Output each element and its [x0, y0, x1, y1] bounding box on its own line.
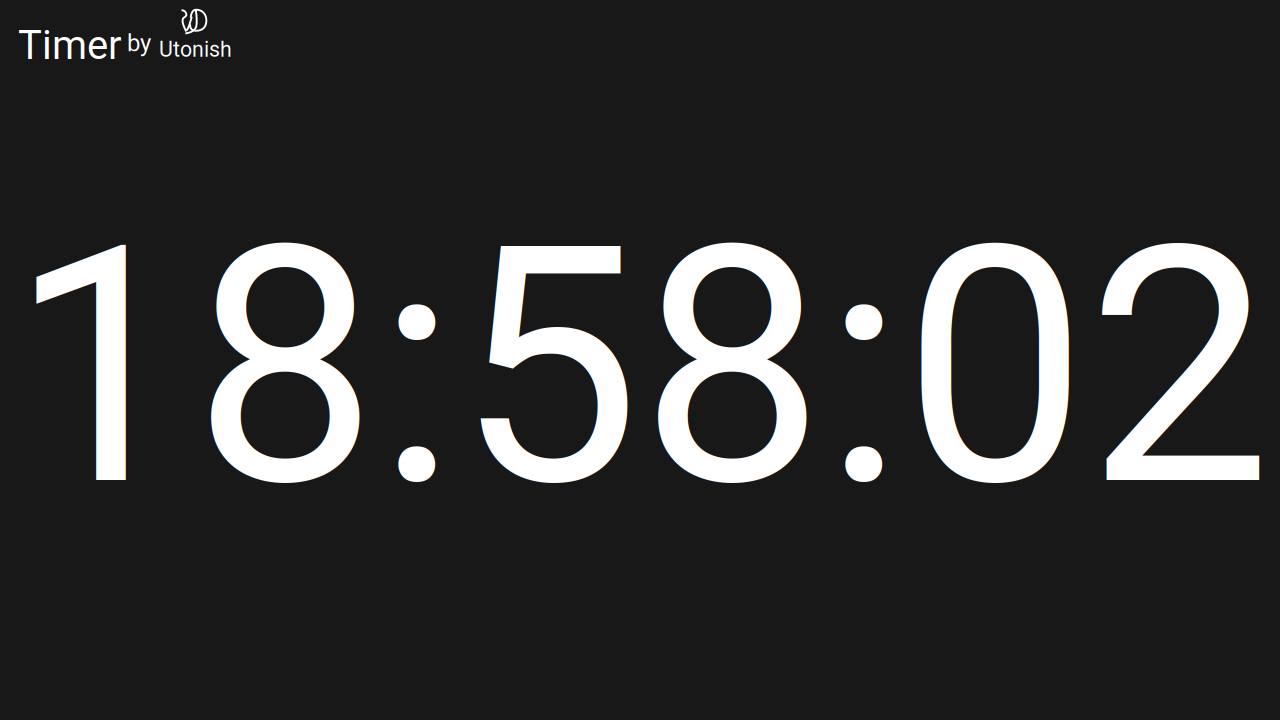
button[interactable]: Timer by Utonish [0, 0, 248, 64]
staticText: Timer [18, 22, 122, 69]
staticText: 18:58:02 [9, 176, 1271, 560]
staticText: by [127, 29, 151, 57]
staticText: Utonish [159, 37, 232, 62]
